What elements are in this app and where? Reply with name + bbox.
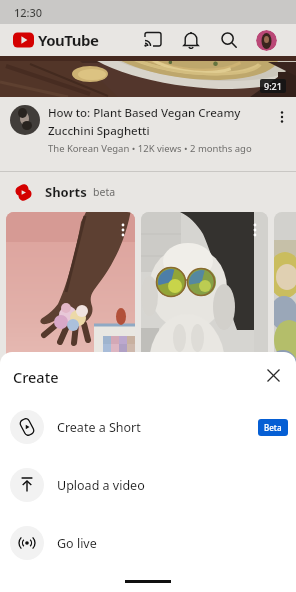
staticText: Go live	[57, 535, 97, 552]
staticText: Create	[13, 367, 59, 387]
button[interactable]	[176, 25, 206, 55]
button[interactable]	[251, 25, 281, 55]
button[interactable]	[214, 25, 244, 55]
staticText: YouTube	[38, 30, 99, 50]
button[interactable]: 9:21	[0, 56, 296, 97]
button[interactable]	[270, 105, 294, 129]
staticText: beta	[93, 185, 116, 199]
staticText: The Korean Vegan • 12K views • 2 months …	[48, 142, 252, 155]
staticText: 9:21	[264, 80, 282, 92]
button[interactable]	[274, 212, 296, 412]
button[interactable]: Create a Short	[0, 398, 296, 456]
staticText: Create a Short	[57, 419, 141, 436]
button[interactable]: How to: Plant Based Vegan Creamy	[0, 97, 296, 155]
button[interactable]: YouTube	[13, 30, 99, 50]
staticText: Upload a video	[57, 477, 145, 494]
button[interactable]	[138, 25, 168, 55]
button[interactable]: Upload a video	[0, 456, 296, 514]
staticText: Zucchini Spaghetti	[48, 123, 150, 139]
staticText: 12:30	[14, 5, 43, 20]
staticText: Shorts	[45, 183, 87, 201]
button[interactable]	[141, 212, 268, 412]
staticText: Beta	[264, 422, 282, 433]
button[interactable]	[258, 360, 288, 390]
staticText: How to: Plant Based Vegan Creamy	[48, 105, 241, 121]
button[interactable]: Go live	[0, 514, 296, 572]
button[interactable]	[6, 212, 135, 412]
